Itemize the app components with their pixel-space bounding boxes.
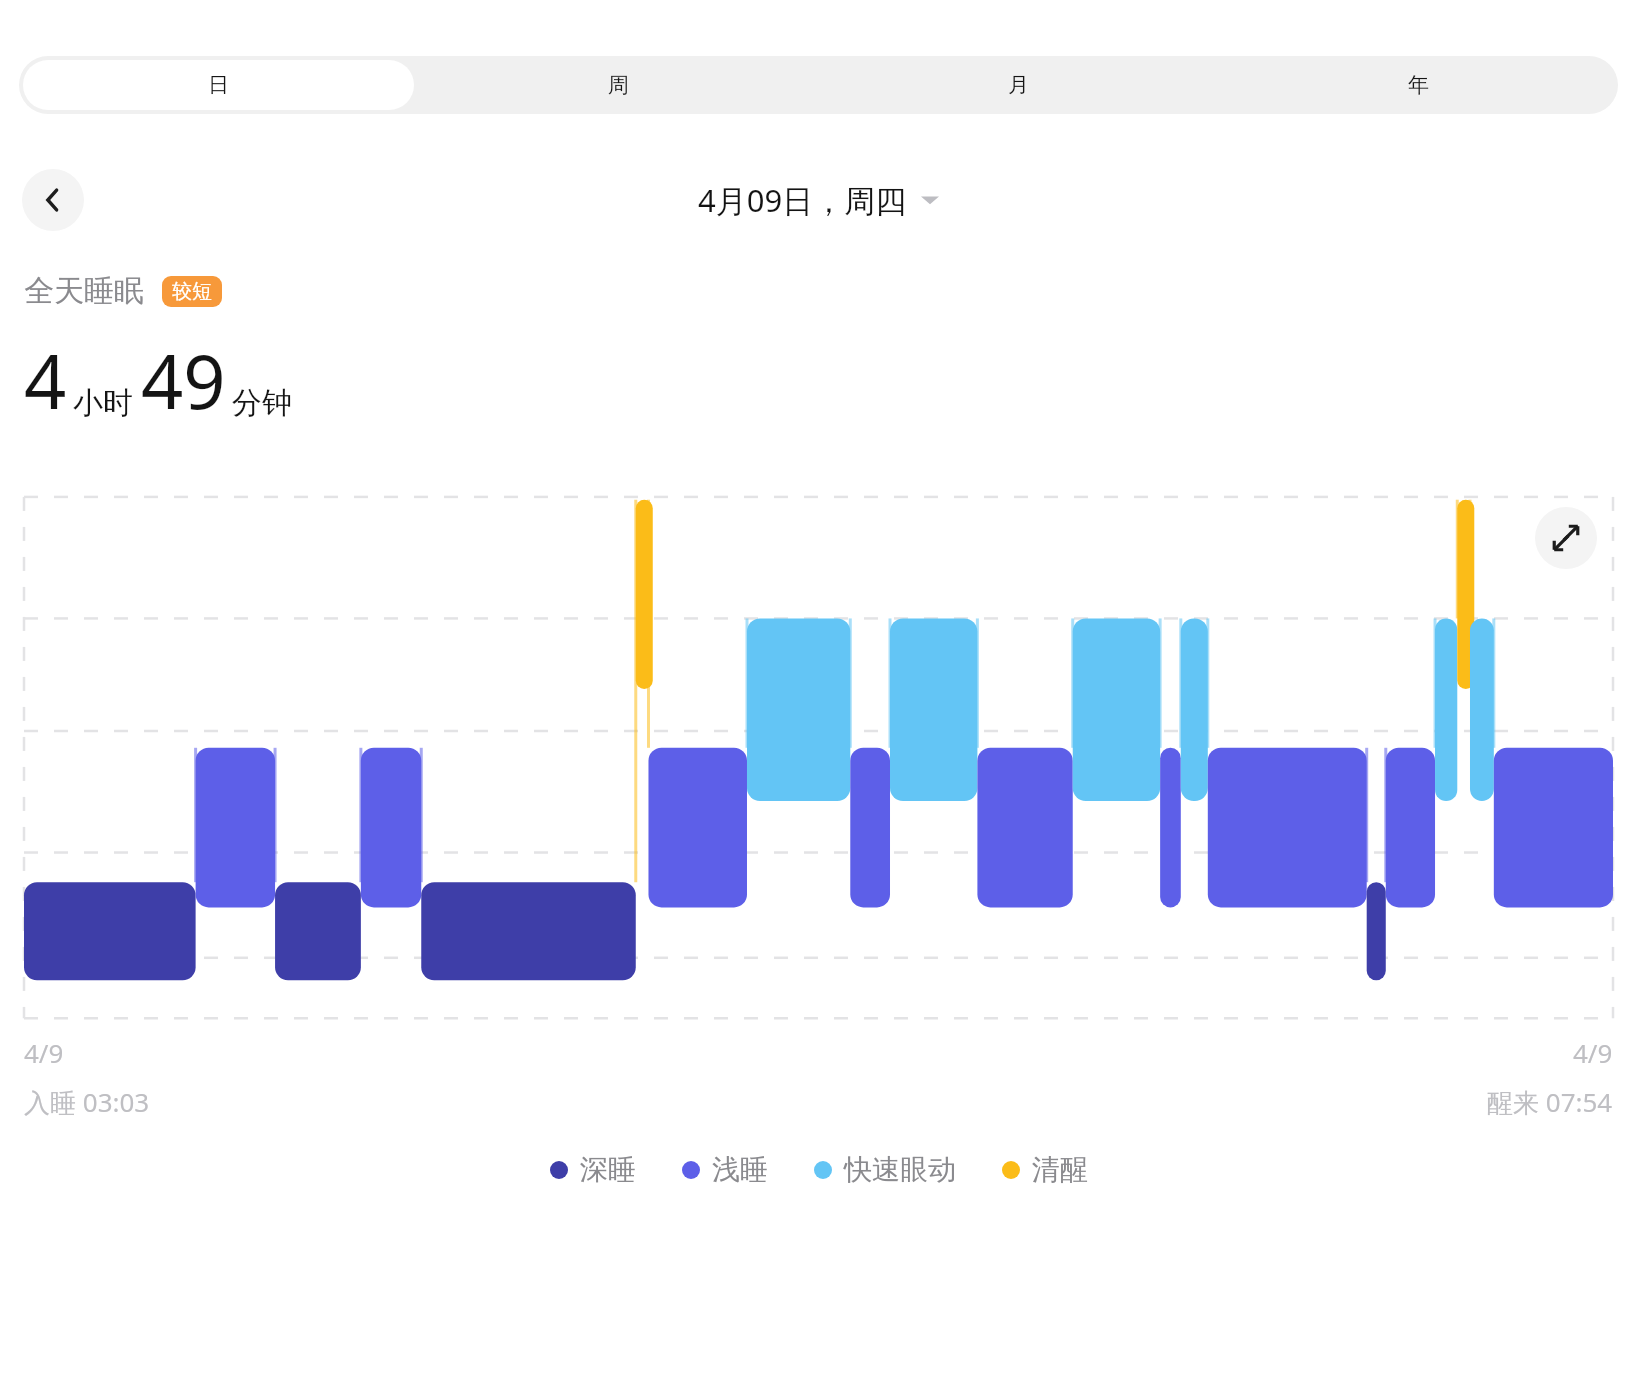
button[interactable]: Expand chart xyxy=(1535,507,1597,569)
staticText: 快速眼动 xyxy=(844,1152,956,1187)
staticText: 月 xyxy=(1008,72,1029,98)
staticText: 4 xyxy=(24,330,67,431)
staticText: 分钟 xyxy=(232,384,292,422)
button[interactable]: 4月09日，周四 xyxy=(698,179,939,221)
staticText: 深睡 xyxy=(580,1152,636,1187)
button[interactable]: 深睡 xyxy=(550,1152,636,1187)
button[interactable]: 快速眼动 xyxy=(814,1152,956,1187)
staticText: 年 xyxy=(1408,72,1429,98)
staticText: 4月09日，周四 xyxy=(698,179,907,221)
staticText: 入睡 03:03 xyxy=(24,1084,150,1120)
staticText: 较短 xyxy=(172,279,212,304)
button[interactable]: 浅睡 xyxy=(682,1152,768,1187)
staticText: 醒来 07:54 xyxy=(1487,1084,1613,1120)
staticText: 清醒 xyxy=(1032,1152,1088,1187)
button[interactable]: Back xyxy=(22,169,84,231)
button[interactable]: 月 xyxy=(822,60,1214,110)
staticText: 4/9 xyxy=(24,1035,64,1070)
staticText: 周 xyxy=(608,72,629,98)
staticText: 浅睡 xyxy=(712,1152,768,1187)
button[interactable]: 日 xyxy=(23,60,414,110)
staticText: 49 xyxy=(141,330,226,431)
staticText: 日 xyxy=(208,72,229,98)
staticText: 全天睡眠 xyxy=(24,272,144,310)
button[interactable]: 周 xyxy=(422,60,814,110)
button[interactable]: 清醒 xyxy=(1002,1152,1088,1187)
button[interactable]: 年 xyxy=(1222,60,1614,110)
staticText: 4/9 xyxy=(1573,1035,1613,1070)
staticText: 小时 xyxy=(73,384,133,422)
